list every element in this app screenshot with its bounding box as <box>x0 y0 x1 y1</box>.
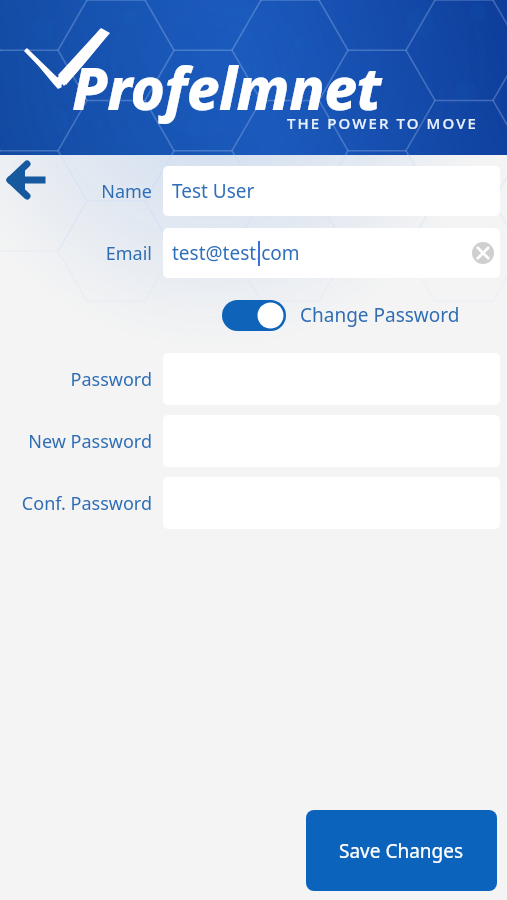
staticText: test@test.com <box>172 240 300 266</box>
button[interactable]: Back <box>0 157 50 203</box>
button[interactable]: Clear text <box>469 239 497 267</box>
button[interactable]: Save Changes <box>306 810 497 891</box>
button[interactable]: Test User <box>163 166 500 216</box>
staticText: New Password <box>28 429 152 454</box>
staticText: Email <box>105 241 152 266</box>
staticText: Name <box>101 179 152 204</box>
staticText: Profelmnet <box>72 48 382 127</box>
staticText: Save Changes <box>339 838 464 864</box>
button[interactable]: Change Password <box>222 296 460 334</box>
staticText: Conf. Password <box>21 491 152 516</box>
staticText: Password <box>70 367 152 392</box>
staticText: Change Password <box>300 302 460 328</box>
button[interactable]: test@test.com <box>163 228 500 278</box>
staticText: THE POWER TO MOVE <box>287 113 478 133</box>
staticText: Test User <box>172 178 255 204</box>
